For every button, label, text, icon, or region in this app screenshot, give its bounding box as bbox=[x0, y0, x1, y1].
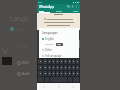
button[interactable] bbox=[64, 71, 67, 76]
button[interactable] bbox=[60, 65, 63, 70]
button[interactable]: Set Language bbox=[42, 54, 77, 58]
staticText: New bbox=[57, 43, 62, 46]
button[interactable] bbox=[72, 59, 75, 64]
button[interactable] bbox=[48, 65, 51, 70]
staticText: English bbox=[45, 37, 54, 41]
button[interactable] bbox=[76, 71, 79, 76]
button[interactable] bbox=[38, 71, 42, 76]
staticText: Other bbox=[45, 48, 53, 52]
button[interactable] bbox=[76, 65, 79, 70]
button[interactable] bbox=[56, 71, 59, 76]
staticText: Languages bbox=[42, 31, 58, 35]
button[interactable] bbox=[48, 59, 51, 64]
staticText: Deutsch bbox=[45, 43, 54, 46]
button[interactable]: Camera bbox=[71, 5, 74, 8]
button[interactable] bbox=[43, 59, 47, 64]
button[interactable]: Deutsch bbox=[42, 43, 77, 46]
button[interactable]: More options bbox=[75, 5, 78, 8]
button[interactable] bbox=[60, 71, 63, 76]
button[interactable] bbox=[38, 65, 42, 70]
staticText: Langu bbox=[10, 14, 30, 23]
button[interactable] bbox=[52, 59, 55, 64]
staticText: 9:41 bbox=[38, 1, 43, 4]
button[interactable] bbox=[64, 65, 67, 70]
staticText: WhatsApp bbox=[39, 5, 55, 9]
button[interactable] bbox=[43, 65, 47, 70]
button[interactable] bbox=[64, 59, 67, 64]
button[interactable]: Other bbox=[42, 48, 77, 52]
button[interactable]: English bbox=[42, 37, 77, 41]
button[interactable] bbox=[56, 65, 59, 70]
button[interactable] bbox=[48, 71, 51, 76]
button[interactable] bbox=[72, 71, 75, 76]
button[interactable] bbox=[43, 71, 47, 76]
staticText: 960 bbox=[22, 60, 29, 65]
button[interactable] bbox=[68, 59, 71, 64]
button[interactable] bbox=[56, 59, 59, 64]
button[interactable] bbox=[52, 65, 55, 70]
staticText: Set Language bbox=[45, 54, 62, 58]
button[interactable] bbox=[60, 59, 63, 64]
button[interactable]: Search bbox=[67, 5, 70, 8]
staticText: Add bbox=[22, 71, 30, 76]
button[interactable] bbox=[52, 71, 55, 76]
button[interactable] bbox=[68, 71, 71, 76]
button[interactable] bbox=[76, 59, 79, 64]
button[interactable] bbox=[68, 65, 71, 70]
button[interactable] bbox=[38, 59, 42, 64]
button[interactable] bbox=[72, 65, 75, 70]
